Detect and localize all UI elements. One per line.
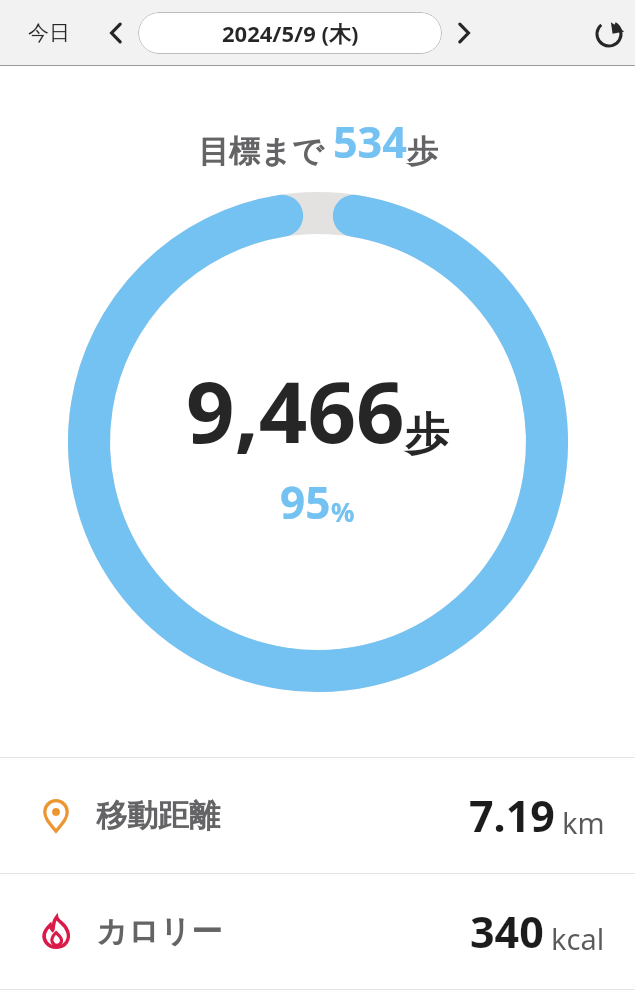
staticText: kcal	[551, 919, 605, 958]
button[interactable]: 今日	[0, 20, 78, 46]
button[interactable]: 移動距離	[0, 758, 635, 873]
staticText: %	[331, 494, 355, 529]
staticText: 9,466	[186, 352, 405, 468]
staticText: 2024/5/9 (木)	[222, 18, 359, 48]
staticText: 歩	[407, 132, 438, 171]
button[interactable]: Next day	[442, 11, 486, 55]
button[interactable]: Previous day	[94, 11, 138, 55]
staticText: km	[562, 803, 605, 842]
staticText: 今日	[28, 20, 70, 46]
button[interactable]: カロリー	[0, 874, 635, 989]
staticText: 7.19	[469, 786, 555, 845]
staticText: カロリー	[96, 912, 223, 951]
button[interactable]: 2024/5/9 (木)	[138, 12, 442, 54]
button[interactable]: Refresh	[583, 7, 635, 59]
staticText: 95	[280, 472, 331, 532]
staticText: 534	[333, 112, 407, 171]
staticText: 目標まで	[198, 132, 324, 171]
staticText: 移動距離	[96, 796, 220, 835]
staticText: 340	[470, 902, 544, 961]
staticText: 歩	[405, 407, 449, 462]
